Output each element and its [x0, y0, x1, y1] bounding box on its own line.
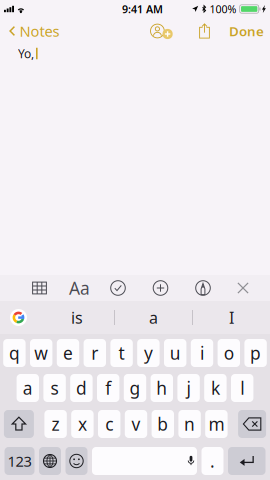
staticText: i — [200, 341, 204, 364]
button[interactable]: r — [84, 339, 106, 367]
staticText: v — [131, 412, 140, 435]
staticText: z — [52, 412, 60, 435]
staticText: 123 — [7, 451, 31, 471]
button[interactable]: q — [3, 339, 26, 367]
staticText: w — [34, 341, 48, 364]
staticText: c — [105, 412, 113, 435]
button[interactable]: a — [17, 374, 39, 402]
staticText: Done — [229, 22, 264, 40]
button[interactable]: n — [178, 410, 201, 438]
button[interactable]: Add Attachment — [148, 276, 172, 300]
button[interactable]: z — [44, 410, 67, 438]
button[interactable]: e — [57, 339, 79, 367]
button[interactable]: m — [205, 410, 228, 438]
button[interactable]: g — [124, 374, 146, 402]
staticText: o — [224, 341, 234, 364]
staticText: is — [71, 307, 83, 328]
button[interactable]: Return — [228, 447, 265, 475]
button[interactable]: Checklist — [106, 276, 130, 300]
button[interactable]: Delete — [238, 410, 266, 438]
staticText: b — [157, 412, 168, 435]
button[interactable]: Next Keyboard — [39, 447, 61, 475]
button[interactable]: b — [152, 410, 174, 438]
button[interactable]: j — [177, 374, 200, 402]
staticText: k — [211, 376, 220, 399]
button[interactable]: Notes — [0, 18, 59, 44]
staticText: h — [156, 376, 167, 399]
staticText: . — [210, 449, 215, 472]
staticText: 100% — [210, 2, 237, 16]
staticText: I — [229, 307, 234, 328]
staticText: j — [187, 376, 191, 399]
button[interactable]: w — [30, 339, 52, 367]
button[interactable]: Add People — [133, 22, 177, 39]
staticText: t — [119, 341, 125, 364]
button[interactable]: Share — [177, 23, 213, 38]
button[interactable]: t — [110, 339, 133, 367]
staticText: p — [250, 341, 261, 364]
button[interactable]: c — [98, 410, 120, 438]
staticText: Notes — [19, 21, 59, 41]
staticText: u — [170, 341, 181, 364]
staticText: 9:41 AM — [122, 2, 163, 16]
staticText: a — [23, 376, 33, 399]
staticText: r — [91, 341, 98, 364]
button[interactable]: a — [115, 301, 192, 334]
staticText: a — [149, 307, 158, 328]
staticText: f — [105, 376, 111, 399]
staticText: g — [129, 376, 140, 399]
button[interactable]: I — [193, 301, 270, 334]
button[interactable]: d — [70, 374, 93, 402]
button[interactable]: k — [204, 374, 227, 402]
staticText: l — [240, 376, 244, 399]
staticText: m — [208, 412, 224, 435]
button[interactable]: Aa — [64, 272, 95, 303]
staticText: Aa — [69, 276, 90, 299]
button[interactable]: Table — [27, 275, 52, 300]
button[interactable]: l — [231, 374, 253, 402]
staticText: d — [76, 376, 87, 399]
staticText: x — [78, 412, 87, 435]
button[interactable]: Shift — [4, 410, 34, 438]
button[interactable]: Markup — [191, 276, 215, 300]
button[interactable]: . — [201, 447, 223, 475]
button[interactable]: Hide Keyboard — [231, 276, 255, 300]
button[interactable]: u — [164, 339, 186, 367]
staticText: q — [9, 341, 20, 364]
staticText: n — [184, 412, 195, 435]
staticText: y — [144, 341, 153, 364]
button[interactable]: Done — [213, 19, 270, 43]
button[interactable]: i — [191, 339, 213, 367]
staticText: Yo, — [18, 45, 34, 61]
button[interactable]: 123 — [4, 447, 34, 475]
button[interactable]: is — [40, 301, 114, 334]
button[interactable]: o — [218, 339, 240, 367]
button[interactable]: y — [137, 339, 160, 367]
staticText: e — [63, 341, 73, 364]
button[interactable]: s — [43, 374, 66, 402]
button[interactable]: x — [71, 410, 94, 438]
button[interactable]: v — [125, 410, 147, 438]
button[interactable]: h — [151, 374, 173, 402]
button[interactable]: p — [244, 339, 267, 367]
button[interactable]: Emoji — [65, 447, 87, 475]
button[interactable]: f — [97, 374, 119, 402]
button[interactable]: space — [92, 447, 197, 475]
staticText: s — [51, 376, 59, 399]
